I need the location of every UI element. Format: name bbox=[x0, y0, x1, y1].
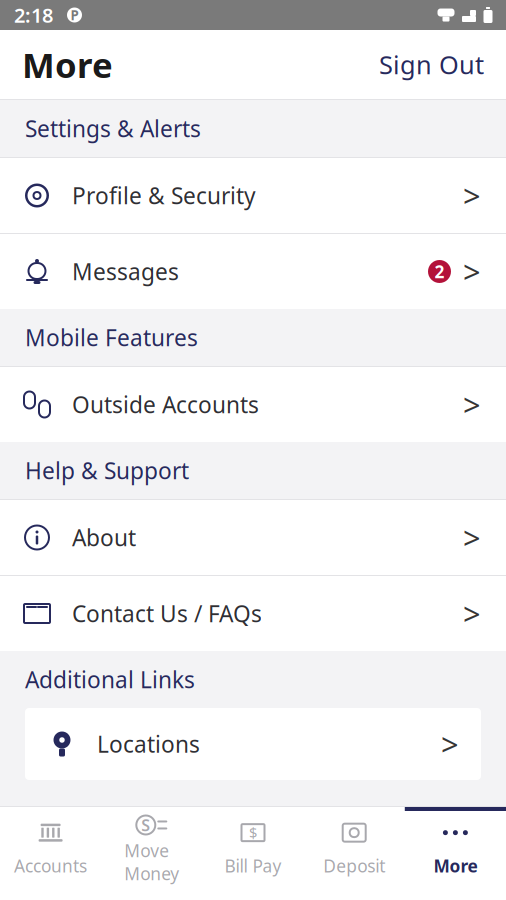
staticText: 2 bbox=[434, 260, 444, 283]
staticText: More bbox=[22, 41, 113, 87]
staticText: Deposit bbox=[323, 854, 385, 877]
staticText: Messages bbox=[72, 256, 179, 286]
staticText: $ bbox=[249, 823, 257, 842]
staticText: Move Money bbox=[124, 839, 179, 885]
staticText: Accounts bbox=[14, 854, 87, 877]
staticText: P bbox=[70, 6, 78, 24]
button[interactable]: S bbox=[101, 807, 202, 900]
staticText: 2:18 bbox=[14, 2, 53, 28]
staticText: Additional Links bbox=[25, 664, 195, 694]
button[interactable]: About bbox=[0, 500, 506, 575]
staticText: More bbox=[433, 854, 477, 877]
button[interactable]: $ bbox=[202, 807, 304, 900]
staticText: Help & Support bbox=[25, 455, 189, 485]
staticText: > bbox=[463, 593, 481, 634]
staticText: Settings & Alerts bbox=[25, 113, 201, 143]
button[interactable]: Accounts bbox=[0, 807, 101, 900]
button[interactable]: Outside Accounts bbox=[0, 367, 506, 442]
staticText: Locations bbox=[97, 729, 200, 759]
staticText: > bbox=[463, 251, 481, 292]
button[interactable]: Messages bbox=[0, 234, 506, 309]
staticText: S bbox=[141, 814, 150, 836]
staticText: > bbox=[463, 384, 481, 425]
staticText: > bbox=[463, 517, 481, 558]
button[interactable]: Contact Us / FAQs bbox=[0, 576, 506, 651]
staticText: Outside Accounts bbox=[72, 389, 259, 419]
staticText: > bbox=[441, 724, 459, 764]
button[interactable]: Profile & Security bbox=[0, 158, 506, 233]
button[interactable]: Sign Out bbox=[379, 36, 506, 93]
staticText: Mobile Features bbox=[25, 322, 198, 352]
staticText: About bbox=[72, 522, 136, 552]
staticText: Contact Us / FAQs bbox=[72, 598, 262, 628]
button[interactable]: More bbox=[405, 807, 506, 900]
staticText: Bill Pay bbox=[224, 854, 281, 877]
staticText: Sign Out bbox=[379, 48, 484, 81]
staticText: Profile & Security bbox=[72, 180, 256, 210]
button[interactable]: Deposit bbox=[304, 807, 405, 900]
button[interactable]: Locations bbox=[25, 708, 481, 780]
staticText: > bbox=[463, 175, 481, 216]
